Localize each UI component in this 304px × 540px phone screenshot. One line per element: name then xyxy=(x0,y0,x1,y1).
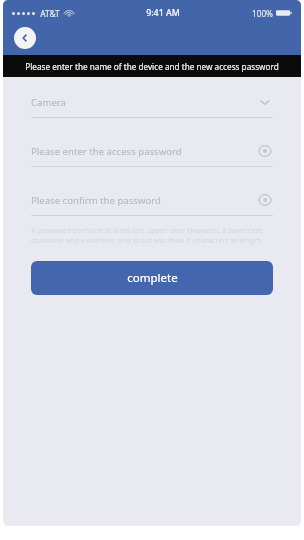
button[interactable]: Show confirm password xyxy=(31,189,273,211)
staticText: 100% xyxy=(252,8,273,19)
staticText: Please confirm the password xyxy=(31,194,257,207)
staticText: AT&T xyxy=(40,8,60,19)
button[interactable]: complete xyxy=(31,261,273,295)
button[interactable]: Select device type xyxy=(31,91,273,113)
staticText: A password contains at least one upper c… xyxy=(31,225,273,245)
button[interactable]: Show access password xyxy=(31,140,273,162)
staticText: 9:41 AM xyxy=(146,7,180,19)
staticText: Please enter the access password xyxy=(31,145,257,158)
staticText: Please enter the name of the device and … xyxy=(25,61,279,72)
button[interactable]: Back xyxy=(14,27,36,49)
staticText: Camera xyxy=(31,96,257,109)
staticText: complete xyxy=(127,270,178,286)
